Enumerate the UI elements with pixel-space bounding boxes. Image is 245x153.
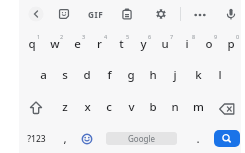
button[interactable]: g <box>120 62 142 88</box>
button[interactable]: l <box>209 62 231 88</box>
button[interactable]: p <box>220 31 242 57</box>
button[interactable]: i <box>176 31 198 57</box>
staticText: , <box>63 131 67 147</box>
staticText: z <box>62 99 68 115</box>
button[interactable]: Stickers <box>55 5 73 23</box>
staticText: q <box>28 36 36 52</box>
staticText: 4 <box>104 33 108 40</box>
staticText: u <box>161 36 169 52</box>
button[interactable]: e <box>66 31 88 57</box>
button[interactable]: Settings <box>152 5 170 23</box>
staticText: 0 <box>236 33 240 40</box>
staticText: e <box>74 36 81 52</box>
staticText: s <box>62 67 68 83</box>
staticText: y <box>140 36 147 52</box>
button[interactable]: a <box>32 62 54 88</box>
button[interactable]: Emoji <box>77 129 97 149</box>
button[interactable]: n <box>164 94 186 120</box>
button[interactable]: Back <box>26 4 46 24</box>
button[interactable]: o <box>198 31 220 57</box>
staticText: t <box>119 36 124 52</box>
staticText: o <box>205 36 213 52</box>
button[interactable]: v <box>120 94 142 120</box>
staticText: 6 <box>148 33 152 40</box>
button[interactable]: Search <box>214 130 240 147</box>
staticText: p <box>227 36 235 52</box>
button[interactable]: h <box>142 62 164 88</box>
button[interactable]: s <box>54 62 76 88</box>
staticText: v <box>128 99 135 115</box>
staticText: 1 <box>37 33 41 40</box>
button[interactable]: q <box>21 31 43 57</box>
button[interactable]: , <box>56 126 74 152</box>
staticText: r <box>97 36 102 52</box>
staticText: h <box>149 67 157 83</box>
button[interactable]: Voice input <box>222 5 240 23</box>
button[interactable]: x <box>76 94 98 120</box>
button[interactable]: u <box>154 31 176 57</box>
button[interactable]: m <box>187 94 209 120</box>
staticText: b <box>149 99 157 115</box>
staticText: . <box>196 131 200 147</box>
staticText: k <box>195 67 202 83</box>
button[interactable]: b <box>142 94 164 120</box>
staticText: 2 <box>60 33 64 40</box>
staticText: g <box>127 67 135 83</box>
button[interactable]: ?123 <box>22 126 50 152</box>
button[interactable]: More options <box>191 6 209 24</box>
button[interactable]: r <box>88 31 110 57</box>
button[interactable]: Shift <box>23 95 49 121</box>
staticText: m <box>193 99 204 115</box>
staticText: w <box>50 36 60 52</box>
staticText: 9 <box>214 33 218 40</box>
staticText: a <box>40 67 47 83</box>
staticText: d <box>83 67 91 83</box>
button[interactable]: Backspace <box>214 96 240 122</box>
staticText: 5 <box>126 33 130 40</box>
staticText: 8 <box>192 33 196 40</box>
staticText: l <box>218 67 222 83</box>
staticText: j <box>173 67 177 83</box>
staticText: 7 <box>170 33 174 40</box>
staticText: GIF <box>88 9 104 20</box>
button[interactable]: Google <box>106 132 177 145</box>
button[interactable]: w <box>44 31 66 57</box>
staticText: ?123 <box>27 133 46 145</box>
staticText: 3 <box>82 33 86 40</box>
staticText: n <box>171 99 179 115</box>
staticText: Google <box>128 133 155 144</box>
button[interactable]: c <box>98 94 120 120</box>
button[interactable]: t <box>110 31 132 57</box>
staticText: c <box>106 99 112 115</box>
button[interactable]: k <box>187 62 209 88</box>
button[interactable]: Clipboard <box>118 5 136 23</box>
button[interactable]: y <box>132 31 154 57</box>
button[interactable]: j <box>164 62 186 88</box>
button[interactable]: f <box>98 62 120 88</box>
staticText: x <box>84 99 91 115</box>
staticText: i <box>185 36 189 52</box>
staticText: f <box>107 67 112 83</box>
button[interactable]: z <box>54 94 76 120</box>
button[interactable]: d <box>76 62 98 88</box>
button[interactable]: GIF <box>85 5 107 23</box>
button[interactable]: . <box>189 126 207 152</box>
